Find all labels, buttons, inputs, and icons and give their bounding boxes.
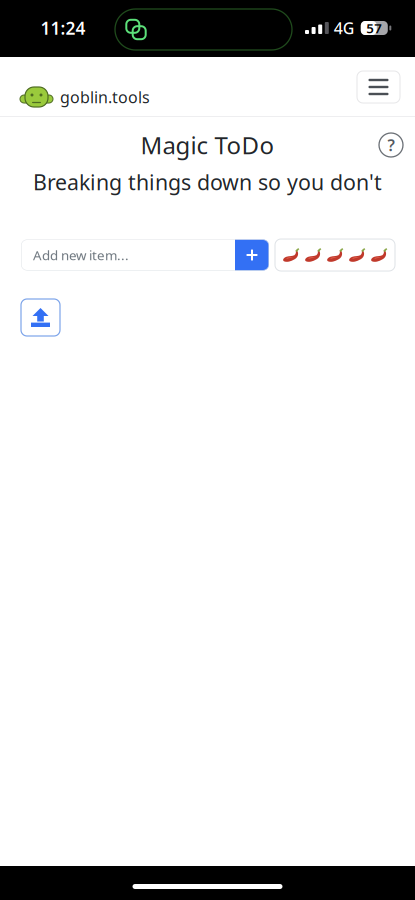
staticText: Add new item... <box>33 246 129 264</box>
button[interactable]: goblin.tools <box>0 57 128 97</box>
button[interactable]: Spiciness level <box>275 239 395 271</box>
button[interactable]: Help <box>376 130 406 160</box>
staticText: Magic ToDo <box>140 129 274 161</box>
button[interactable]: Add item <box>235 239 269 270</box>
staticText: 57 <box>366 19 382 37</box>
staticText: ? <box>387 134 394 156</box>
staticText: 4G <box>334 17 355 39</box>
staticText: goblin.tools <box>60 86 150 108</box>
staticText: 11:24 <box>40 16 85 39</box>
button[interactable]: Upload <box>21 299 60 336</box>
button[interactable]: Menu <box>357 71 400 103</box>
staticText: Breaking things down so you don't <box>33 168 382 196</box>
